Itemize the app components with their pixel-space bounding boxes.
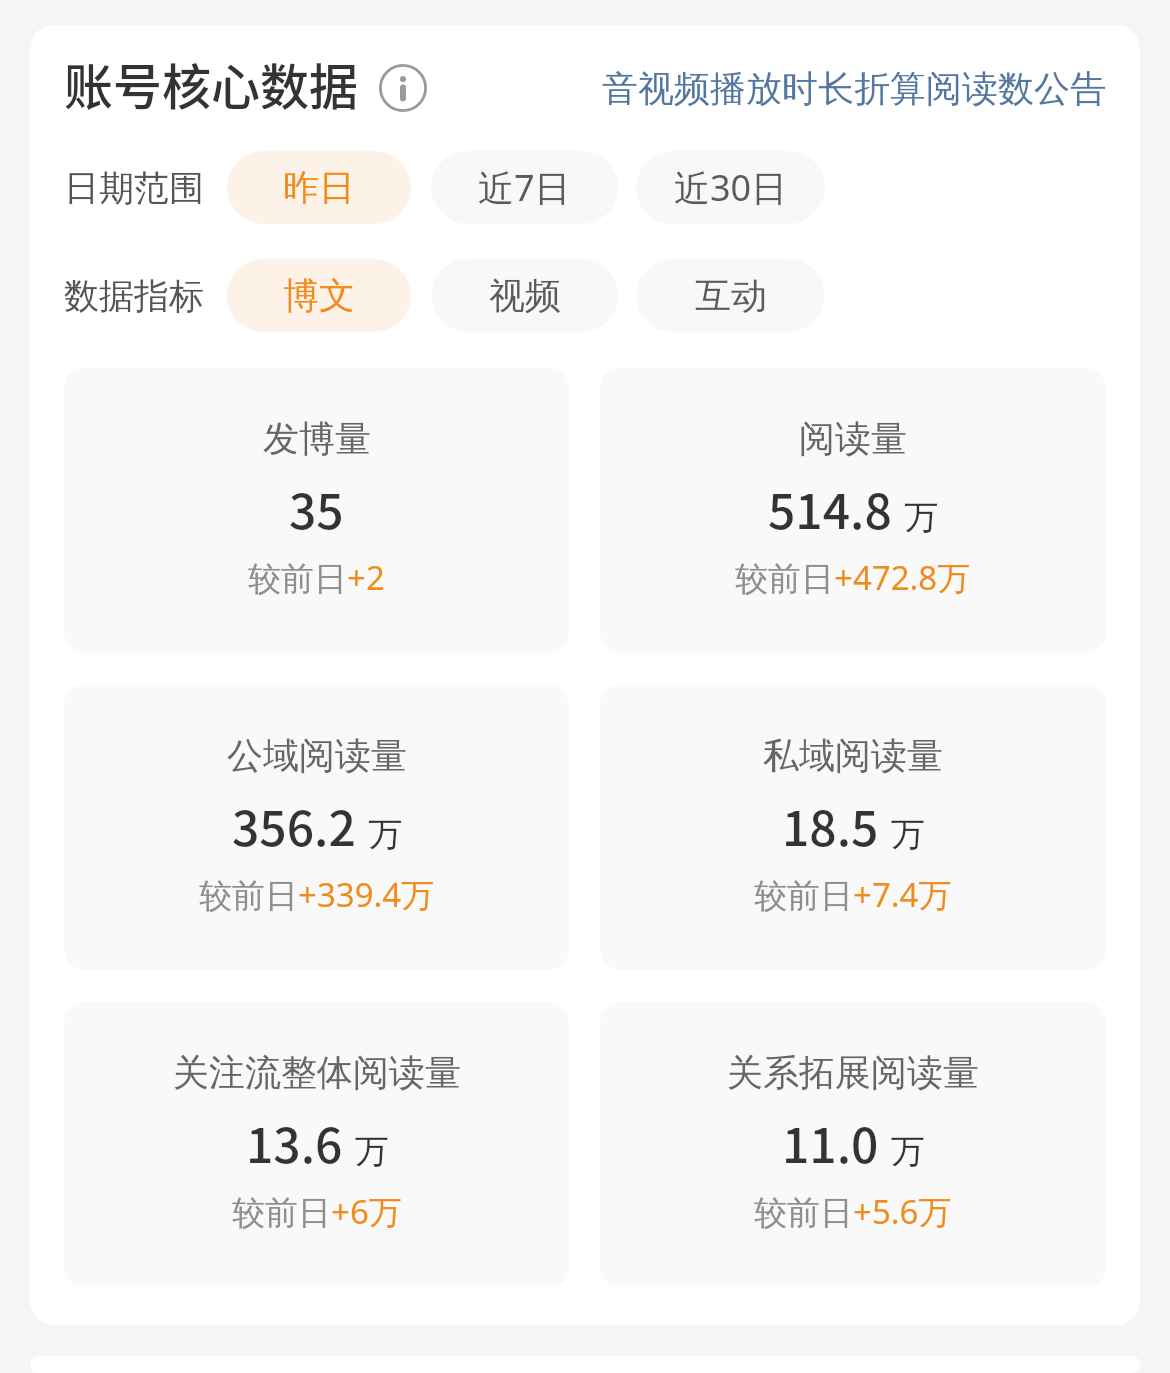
staticText: 近30日 (674, 163, 788, 212)
button[interactable]: About account core data (379, 64, 427, 112)
staticText: 较前日+5.6万 (754, 1189, 952, 1234)
staticText: 18.5 万 (782, 790, 925, 860)
staticText: 发博量 (263, 416, 371, 461)
button[interactable]: 关系拓展阅读量 (600, 1002, 1106, 1287)
staticText: 较前日+6万 (232, 1189, 402, 1234)
staticText: 较前日+472.8万 (735, 555, 971, 600)
button[interactable]: 近30日 (636, 151, 825, 224)
staticText: 数据指标 (64, 274, 204, 318)
staticText: 视频 (489, 273, 561, 318)
button[interactable]: 昨日 (227, 151, 411, 224)
button[interactable]: 公域阅读量 (64, 685, 569, 970)
staticText: 阅读量 (799, 416, 907, 461)
staticText: 私域阅读量 (763, 733, 943, 778)
staticText: 356.2 万 (232, 790, 403, 860)
staticText: 近7日 (478, 163, 571, 212)
staticText: 昨日 (283, 165, 355, 210)
button[interactable]: 关注流整体阅读量 (64, 1002, 569, 1287)
staticText: 博文 (283, 273, 355, 318)
staticText: 35 (289, 473, 344, 543)
staticText: 11.0 万 (782, 1107, 925, 1177)
button[interactable]: 发博量 (64, 368, 569, 653)
staticText: 较前日+2 (248, 555, 385, 600)
staticText: 公域阅读量 (227, 733, 407, 778)
button[interactable]: 阅读量 (600, 368, 1106, 653)
staticText: 较前日+339.4万 (199, 872, 435, 917)
staticText: 账号核心数据 (64, 48, 359, 119)
staticText: 514.8 万 (768, 473, 939, 543)
staticText: 关注流整体阅读量 (173, 1050, 461, 1095)
staticText: 日期范围 (64, 166, 204, 210)
staticText: 音视频播放时长折算阅读数公告 (602, 66, 1106, 111)
button[interactable]: 音视频播放时长折算阅读数公告 (602, 62, 1106, 115)
button[interactable]: 私域阅读量 (600, 685, 1106, 970)
staticText: 互动 (695, 273, 767, 318)
button[interactable]: 博文 (227, 259, 411, 332)
staticText: 13.6 万 (246, 1107, 389, 1177)
staticText: 关系拓展阅读量 (727, 1050, 979, 1095)
button[interactable]: 视频 (431, 259, 618, 332)
button[interactable]: 互动 (636, 259, 825, 332)
button[interactable]: 近7日 (431, 151, 618, 224)
staticText: 较前日+7.4万 (754, 872, 952, 917)
